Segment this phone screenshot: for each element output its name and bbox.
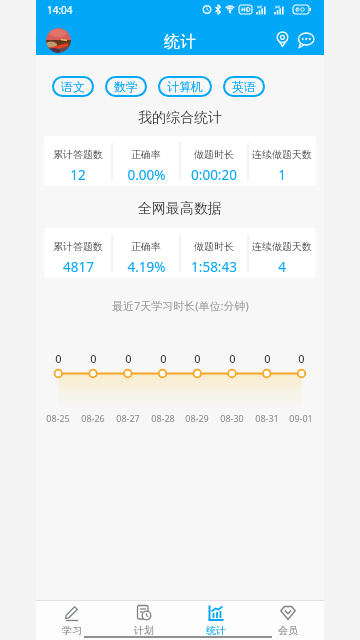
- button[interactable]: 计算机: [158, 76, 212, 97]
- staticText: 学习: [62, 624, 82, 637]
- staticText: 数学: [114, 79, 138, 94]
- staticText: 统计: [164, 32, 196, 52]
- staticText: 0.00%: [127, 166, 166, 184]
- staticText: 0: [55, 351, 62, 366]
- staticText: 0: [298, 351, 305, 366]
- staticText: 累计答题数: [53, 240, 103, 253]
- staticText: 4.19%: [127, 258, 166, 276]
- staticText: 08-26: [81, 412, 105, 424]
- staticText: 1:58:43: [191, 258, 237, 276]
- staticText: 连续做题天数: [252, 148, 312, 161]
- staticText: 0: [229, 351, 236, 366]
- staticText: 计划: [134, 624, 154, 637]
- staticText: 语文: [61, 79, 85, 94]
- staticText: 4817: [63, 258, 94, 276]
- staticText: 0: [90, 351, 97, 366]
- staticText: 12: [70, 166, 86, 184]
- button[interactable]: 数学: [105, 76, 147, 97]
- button[interactable]: 学习: [36, 600, 108, 640]
- button[interactable]: 语文: [52, 76, 94, 97]
- staticText: 0: [160, 351, 167, 366]
- staticText: 09-01: [289, 412, 313, 424]
- staticText: 1: [278, 166, 286, 184]
- button[interactable]: 英语: [223, 76, 265, 97]
- staticText: 0: [264, 351, 271, 366]
- staticText: 统计: [206, 624, 226, 637]
- staticText: 0: [194, 351, 201, 366]
- staticText: 做题时长: [194, 240, 234, 253]
- staticText: 0: [125, 351, 132, 366]
- button[interactable]: [298, 32, 315, 49]
- staticText: 全网最高数据: [138, 200, 222, 218]
- staticText: 累计答题数: [53, 148, 103, 161]
- button[interactable]: 会员: [252, 600, 324, 640]
- staticText: 英语: [232, 79, 256, 94]
- staticText: 08-28: [151, 412, 175, 424]
- button[interactable]: [274, 31, 291, 48]
- button[interactable]: [46, 28, 71, 53]
- button[interactable]: 计划: [108, 600, 180, 640]
- staticText: 我的综合统计: [138, 109, 222, 127]
- staticText: 计算机: [167, 79, 203, 94]
- staticText: 08-27: [116, 412, 140, 424]
- staticText: 做题时长: [194, 148, 234, 161]
- button[interactable]: 统计: [180, 600, 252, 640]
- staticText: 14:04: [47, 3, 73, 17]
- staticText: 4: [278, 258, 286, 276]
- staticText: 08-29: [185, 412, 209, 424]
- staticText: 连续做题天数: [252, 240, 312, 253]
- staticText: 08-31: [255, 412, 279, 424]
- staticText: 正确率: [131, 240, 161, 253]
- staticText: 正确率: [131, 148, 161, 161]
- staticText: 08-25: [46, 412, 70, 424]
- staticText: 08-30: [220, 412, 244, 424]
- staticText: 最近7天学习时长(单位:分钟): [112, 298, 249, 313]
- staticText: 0:00:20: [191, 166, 237, 184]
- staticText: 会员: [278, 624, 298, 637]
